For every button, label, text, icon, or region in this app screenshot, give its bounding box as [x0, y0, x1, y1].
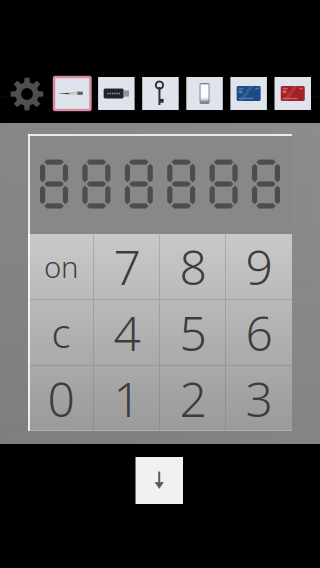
staticText: 4	[113, 301, 140, 364]
button[interactable]: Blue bank card	[230, 77, 267, 110]
staticText: c	[51, 306, 70, 359]
button[interactable]: 5	[160, 300, 226, 365]
staticText: 1	[113, 367, 140, 430]
button[interactable]: Mobile phone	[186, 77, 223, 110]
button[interactable]: Key	[142, 77, 179, 110]
button[interactable]: 7	[94, 234, 160, 299]
button[interactable]: Go back	[135, 457, 183, 504]
button[interactable]: Settings	[5, 74, 49, 114]
staticText: 9	[245, 235, 272, 298]
button[interactable]: 8	[160, 234, 226, 299]
button[interactable]: 6	[226, 300, 292, 365]
staticText: 3	[245, 367, 272, 430]
staticText: 7	[113, 235, 140, 298]
button[interactable]: on	[28, 234, 94, 299]
staticText: 2	[179, 367, 206, 430]
staticText: 6	[245, 301, 272, 364]
button[interactable]: Red bank card	[274, 77, 311, 110]
staticText: 5	[179, 301, 206, 364]
staticText: on	[44, 247, 78, 286]
button[interactable]: USB flash drive	[98, 77, 135, 110]
button[interactable]: 3	[226, 366, 292, 431]
button[interactable]: 4	[94, 300, 160, 365]
button[interactable]: c	[28, 300, 94, 365]
button[interactable]: 2	[160, 366, 226, 431]
button[interactable]: 0	[28, 366, 94, 431]
staticText: 8	[179, 235, 206, 298]
staticText: 0	[47, 367, 74, 430]
button[interactable]: Metal probe	[54, 77, 90, 110]
button[interactable]: 9	[226, 234, 292, 299]
button[interactable]: 1	[94, 366, 160, 431]
